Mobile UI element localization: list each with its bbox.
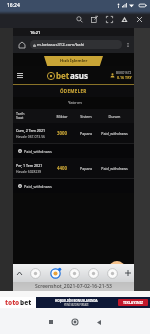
staticText: Havale 067.073.56 <box>16 134 46 139</box>
staticText: Screenshot_2021-07-02-16-21-53 <box>35 283 112 290</box>
staticText: bet <box>20 298 32 307</box>
staticText: YENİ SEZON FIRSATI <box>64 303 89 307</box>
button[interactable]: Search <box>72 11 87 28</box>
button[interactable]: Crop <box>102 11 117 28</box>
button[interactable]: Home <box>13 36 30 53</box>
button[interactable]: Record <box>109 261 125 277</box>
button[interactable]: More options <box>122 39 134 51</box>
button[interactable]: Tab 3 <box>65 264 84 282</box>
staticText: Durum <box>98 114 131 119</box>
button[interactable]: TIKLAYINIZ <box>118 299 148 306</box>
staticText: Paid_withdraws <box>98 166 131 171</box>
staticText: BUKO1672 <box>116 71 132 75</box>
button[interactable]: Tab 1 <box>25 264 45 282</box>
staticText: Paid_withdraws <box>98 131 131 136</box>
button[interactable]: toto <box>0 297 150 308</box>
button[interactable]: Tab 2 <box>45 264 65 282</box>
staticText: ÖDEMELER <box>60 88 87 94</box>
staticText: Tarih Saat <box>16 111 50 121</box>
staticText: Sistem <box>74 114 98 119</box>
staticText: bet <box>56 70 70 81</box>
button[interactable]: Expand tabs <box>13 264 25 282</box>
button[interactable]: m.betasus312.com/bahi <box>30 40 122 49</box>
staticText: HOŞGELDİN BONUSLARINDA <box>55 299 98 303</box>
button[interactable]: BUKO1672 <box>110 71 132 80</box>
staticText: Cum, 2 Tem 2021 <box>16 128 46 133</box>
button[interactable]: Paid_withdraws <box>13 143 134 158</box>
staticText: 0.16 TRY <box>117 75 132 80</box>
button[interactable]: Edit <box>87 11 102 28</box>
staticText: Papara <box>74 131 98 136</box>
staticText: Paid_withdraws <box>24 149 52 154</box>
button[interactable]: Share <box>117 11 132 28</box>
button[interactable]: Per, 1 Tem 2021 <box>13 158 134 178</box>
staticText: 4400 <box>50 165 74 171</box>
button[interactable]: Cum, 2 Tem 2021 <box>13 123 134 143</box>
staticText: 16:21 <box>30 30 41 35</box>
button[interactable]: Hızlı İşlemler <box>44 56 103 66</box>
staticText: asus <box>70 70 89 81</box>
button[interactable]: Tab 5 <box>103 264 122 282</box>
staticText: Papara <box>74 166 98 171</box>
button[interactable]: New tab <box>122 264 134 282</box>
staticText: Yatırım <box>68 100 82 106</box>
button[interactable]: Back <box>88 311 110 333</box>
staticText: Per, 1 Tem 2021 <box>16 163 43 168</box>
staticText: Hızlı İşlemler <box>60 58 88 64</box>
button[interactable]: Recents <box>40 311 62 333</box>
staticText: Havale 6028239 <box>16 169 42 174</box>
button[interactable]: Close <box>132 11 147 28</box>
button[interactable]: Paid_withdraws <box>13 178 134 193</box>
staticText: toto <box>5 298 20 307</box>
staticText: Miktar <box>50 114 74 119</box>
staticText: 16:24 <box>7 2 20 9</box>
staticText: TIKLAYINIZ <box>123 300 144 305</box>
button[interactable]: Tab 4 <box>84 264 103 282</box>
staticText: Paid_withdraws <box>24 184 52 189</box>
button[interactable]: Home <box>64 311 86 333</box>
staticText: 3000 <box>50 130 74 136</box>
staticText: m.betasus312.com/bahi <box>37 42 85 48</box>
button[interactable]: Yatırım <box>16 97 134 109</box>
button[interactable]: Menu <box>13 68 27 82</box>
